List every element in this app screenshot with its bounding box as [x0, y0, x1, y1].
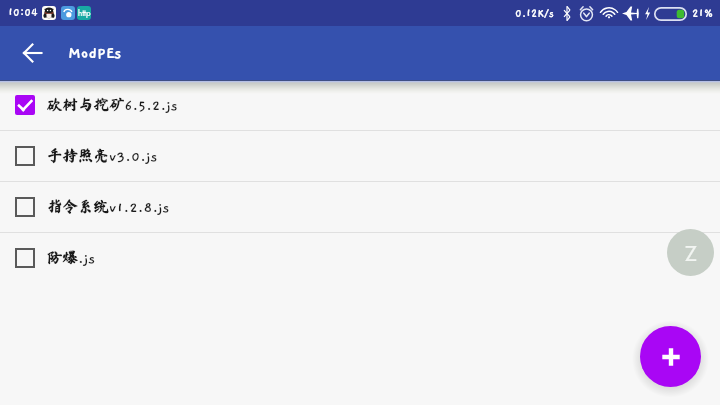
button[interactable]: Fast scroll [667, 229, 714, 276]
staticText: 21% [692, 7, 714, 20]
staticText: Z [685, 237, 697, 269]
staticText: 0.12K/s [515, 8, 555, 20]
staticText: http [78, 7, 91, 19]
staticText: 10:04 [8, 7, 38, 19]
staticText: 防爆.js [47, 249, 96, 267]
button[interactable]: 手持照亮v3.0.js [0, 131, 720, 181]
staticText: 砍树与挖矿6.5.2.js [47, 96, 178, 114]
staticText: ModPEs [68, 44, 122, 62]
staticText: 指令系统v1.2.8.js [47, 198, 170, 216]
button[interactable]: 指令系统v1.2.8.js [0, 182, 720, 232]
staticText: 手持照亮v3.0.js [47, 147, 158, 165]
button[interactable]: 砍树与挖矿6.5.2.js [0, 80, 720, 130]
button[interactable]: 防爆.js [0, 233, 720, 283]
button[interactable]: Add [640, 326, 701, 387]
button[interactable]: Back [0, 26, 64, 80]
